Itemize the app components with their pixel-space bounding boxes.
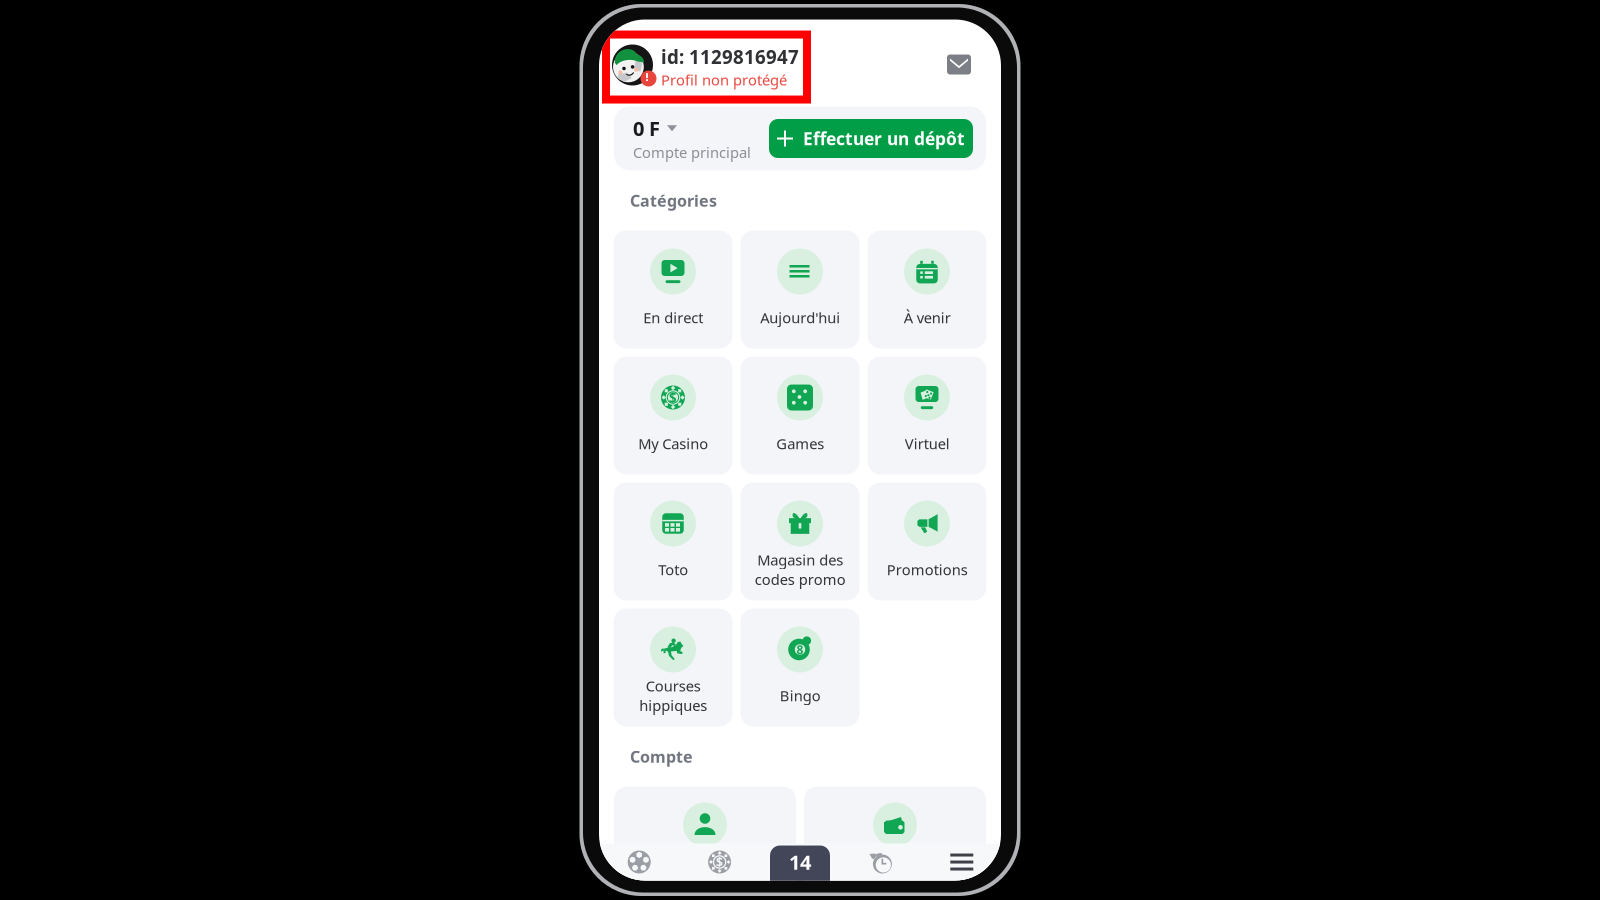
staticText: Bingo [779, 686, 820, 705]
staticText: Effectuer un dépôt [803, 127, 965, 150]
button[interactable]: Toto [613, 482, 732, 600]
staticText: $ [716, 854, 723, 870]
staticText: 14 [789, 849, 811, 875]
button[interactable]: Betslip, 14 items [760, 841, 840, 882]
button[interactable]: Menu [921, 843, 1001, 880]
button[interactable]: À venir [867, 230, 986, 348]
staticText: Profil non protégé [661, 70, 787, 90]
button[interactable]: Courses hippiques [613, 608, 732, 726]
staticText: My Casino [638, 434, 708, 453]
button[interactable]: 8 [740, 608, 859, 726]
staticText: Games [776, 434, 824, 453]
button[interactable]: Aujourd'hui [740, 230, 859, 348]
staticText: 8 [796, 641, 803, 657]
button[interactable]: History [840, 843, 921, 880]
button[interactable]: 0 F [633, 115, 677, 142]
staticText: $ [669, 389, 677, 406]
button[interactable]: Casino [679, 843, 760, 880]
staticText: Magasin des codes promo [754, 550, 845, 589]
button[interactable]: Games [740, 356, 859, 474]
staticText: Promotions [886, 560, 967, 579]
staticText: Aujourd'hui [760, 308, 840, 327]
staticText: id: 1129816947 [661, 44, 799, 69]
button[interactable]: Promotions [867, 482, 986, 600]
staticText: Toto [658, 560, 688, 579]
button[interactable]: Effectuer un dépôt [769, 119, 973, 158]
staticText: Compte [630, 746, 693, 767]
staticText: Catégories [630, 190, 717, 211]
button[interactable]: Sports [599, 843, 679, 880]
button[interactable]: Virtuel [867, 356, 986, 474]
staticText: Compte principal [633, 142, 751, 162]
button[interactable]: Messages [939, 19, 979, 84]
button[interactable] [804, 786, 986, 900]
staticText: Virtuel [904, 434, 949, 453]
button[interactable]: $ [613, 356, 732, 474]
button[interactable]: id: 1129816947 [602, 19, 811, 103]
button[interactable]: En direct [613, 230, 732, 348]
staticText: Courses hippiques [639, 676, 707, 715]
button[interactable]: Magasin des codes promo [740, 482, 859, 600]
staticText: En direct [643, 308, 703, 327]
staticText: À venir [903, 308, 950, 327]
staticText: 0 F [633, 115, 660, 142]
button[interactable] [614, 786, 796, 900]
